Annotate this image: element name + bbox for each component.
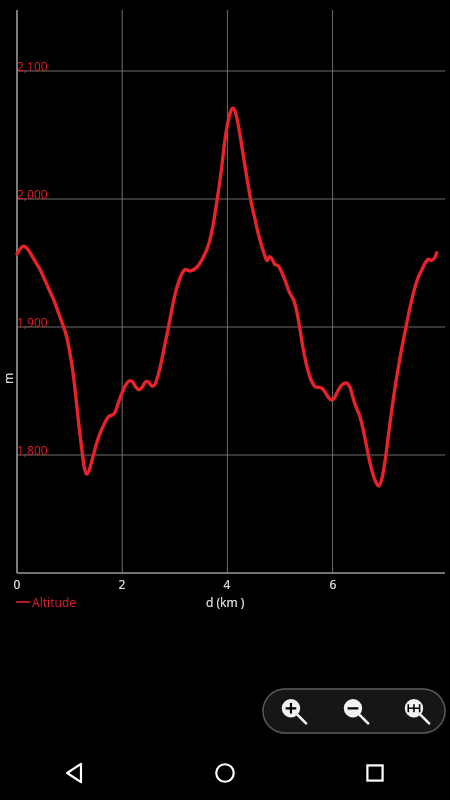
staticText: 4 bbox=[215, 576, 239, 592]
staticText: d (km ) bbox=[206, 594, 245, 610]
staticText: 2,000 bbox=[17, 186, 48, 202]
staticText: m bbox=[0, 372, 16, 384]
button[interactable]: Back bbox=[0, 745, 150, 800]
staticText: 2,100 bbox=[17, 58, 48, 74]
staticText: 1,900 bbox=[17, 314, 48, 330]
button[interactable]: Recents bbox=[300, 745, 450, 800]
staticText: 1,800 bbox=[17, 442, 48, 458]
staticText: 2 bbox=[110, 576, 134, 592]
button[interactable]: Reset zoom bbox=[385, 688, 446, 734]
staticText: Altitude bbox=[32, 594, 77, 610]
staticText: 6 bbox=[321, 576, 345, 592]
button[interactable]: Zoom out bbox=[324, 688, 385, 734]
button[interactable]: Home bbox=[150, 745, 300, 800]
button[interactable]: Zoom in bbox=[262, 688, 324, 734]
staticText: 0 bbox=[5, 576, 29, 592]
